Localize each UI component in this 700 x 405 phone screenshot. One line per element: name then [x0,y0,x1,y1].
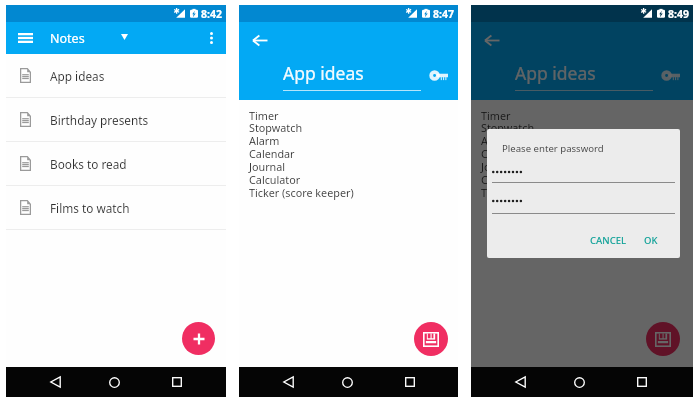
button[interactable]: Back [275,367,302,397]
button[interactable]: Films to watch [6,186,226,230]
button[interactable]: Home [334,367,361,397]
button[interactable]: Home [101,367,128,397]
button[interactable]: Set password [425,66,451,84]
button[interactable]: CANCEL [586,230,631,251]
staticText: 8:49 [668,7,689,21]
button[interactable]: OK [640,230,662,251]
staticText: Films to watch [50,200,130,216]
button[interactable]: Open navigation drawer [12,22,39,54]
staticText: Timer Stopwatch Alarm Calendar Journal C… [249,108,354,200]
staticText: Notes [50,30,85,47]
staticText: CANCEL [590,234,627,247]
button[interactable]: Add note [182,322,215,355]
button[interactable]: Recent apps [163,367,190,397]
staticText: App ideas [283,61,364,85]
staticText: 8:42 [201,7,222,21]
staticText: 8:49 [668,7,689,21]
staticText: OK [644,234,658,247]
button[interactable]: More options [199,22,223,54]
staticText: Timer Stopwatch Alarm Calendar Journal C… [481,108,586,200]
staticText: 8:47 [433,7,454,21]
button[interactable]: Back [42,367,69,397]
button[interactable]: Choose notebook [111,22,137,54]
button[interactable]: Birthday presents [6,98,226,142]
button[interactable]: Recent apps [628,367,655,397]
staticText: App ideas [515,61,596,85]
button[interactable]: Books to read [6,142,226,186]
button[interactable]: Navigate up [479,27,505,53]
staticText: App ideas [50,68,105,84]
button[interactable]: Recent apps [396,367,423,397]
button[interactable]: Back [507,367,534,397]
button[interactable]: App ideas [6,54,226,98]
staticText: Books to read [50,156,127,172]
staticText: Birthday presents [50,112,149,128]
button[interactable]: Home [566,367,593,397]
staticText: Please enter password [502,142,604,155]
button[interactable]: Save note [414,322,448,356]
button[interactable]: Save note [646,322,680,356]
button[interactable]: Navigate up [247,27,273,53]
button[interactable]: Set password [657,66,683,84]
